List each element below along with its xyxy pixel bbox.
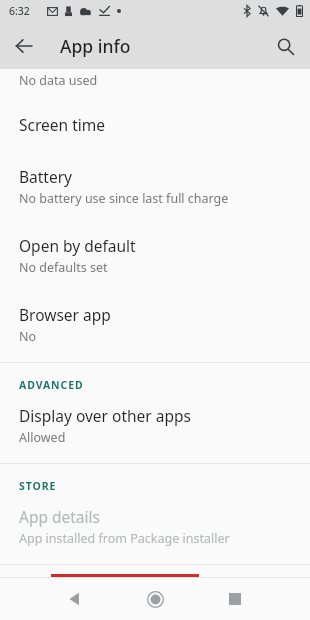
button[interactable]: Battery: [0, 152, 310, 221]
button[interactable]: Search: [269, 30, 301, 62]
button[interactable]: Recent apps: [218, 582, 252, 616]
staticText: version 5.04.0.5043310: [60, 583, 196, 598]
button[interactable]: Display over other apps: [0, 402, 310, 463]
staticText: No battery use since last full charge: [19, 190, 229, 207]
staticText: No data used: [19, 72, 98, 89]
button[interactable]: App details: [0, 503, 310, 564]
staticText: App details: [19, 506, 100, 527]
button[interactable]: Browser app: [0, 290, 310, 362]
staticText: Browser app: [19, 304, 111, 325]
button[interactable]: No data used: [0, 69, 310, 97]
staticText: 6:32: [9, 4, 30, 18]
staticText: App installed from Package installer: [19, 530, 230, 547]
button[interactable]: Home: [138, 582, 172, 616]
staticText: Screen time: [19, 114, 105, 135]
button[interactable]: Screen time: [0, 97, 310, 152]
staticText: Display over other apps: [19, 405, 191, 426]
button[interactable]: version 5.04.0.5043310: [0, 565, 310, 598]
staticText: App info: [60, 34, 131, 58]
button[interactable]: Back: [8, 30, 40, 62]
staticText: STORE: [19, 479, 57, 493]
staticText: Battery: [19, 166, 73, 187]
staticText: No defaults set: [19, 259, 108, 276]
staticText: Open by default: [19, 235, 136, 256]
staticText: ADVANCED: [19, 378, 84, 392]
button[interactable]: Back: [58, 582, 92, 616]
staticText: No: [19, 328, 37, 345]
staticText: Allowed: [19, 429, 66, 446]
button[interactable]: Open by default: [0, 221, 310, 290]
